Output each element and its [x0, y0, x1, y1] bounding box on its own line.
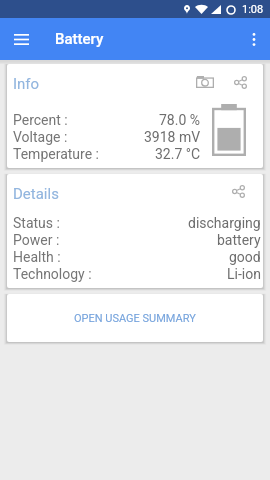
- button[interactable]: Share: [226, 179, 250, 203]
- staticText: Voltage :: [13, 129, 68, 145]
- staticText: Temperature :: [13, 146, 99, 162]
- staticText: Li-ion: [227, 266, 261, 282]
- staticText: battery: [217, 232, 261, 248]
- staticText: 32.7 °C: [155, 146, 201, 162]
- button[interactable]: More options: [239, 24, 269, 54]
- staticText: Health :: [13, 249, 61, 265]
- staticText: Percent :: [13, 112, 68, 128]
- button[interactable]: Open navigation drawer: [6, 24, 37, 55]
- staticText: Info: [13, 75, 40, 93]
- staticText: Technology :: [13, 266, 92, 282]
- staticText: Details: [13, 185, 59, 203]
- button[interactable]: Share: [228, 70, 252, 94]
- staticText: Status :: [13, 215, 60, 231]
- staticText: good: [229, 249, 261, 265]
- button[interactable]: OPEN USAGE SUMMARY: [7, 294, 263, 342]
- staticText: Battery: [55, 30, 104, 48]
- staticText: 78.0 %: [159, 112, 201, 128]
- staticText: discharging: [188, 215, 261, 231]
- button[interactable]: Screenshot: [193, 70, 217, 94]
- staticText: 3918 mV: [144, 129, 201, 145]
- staticText: Power :: [13, 232, 60, 248]
- staticText: OPEN USAGE SUMMARY: [74, 312, 196, 325]
- staticText: 1:08: [242, 3, 264, 16]
